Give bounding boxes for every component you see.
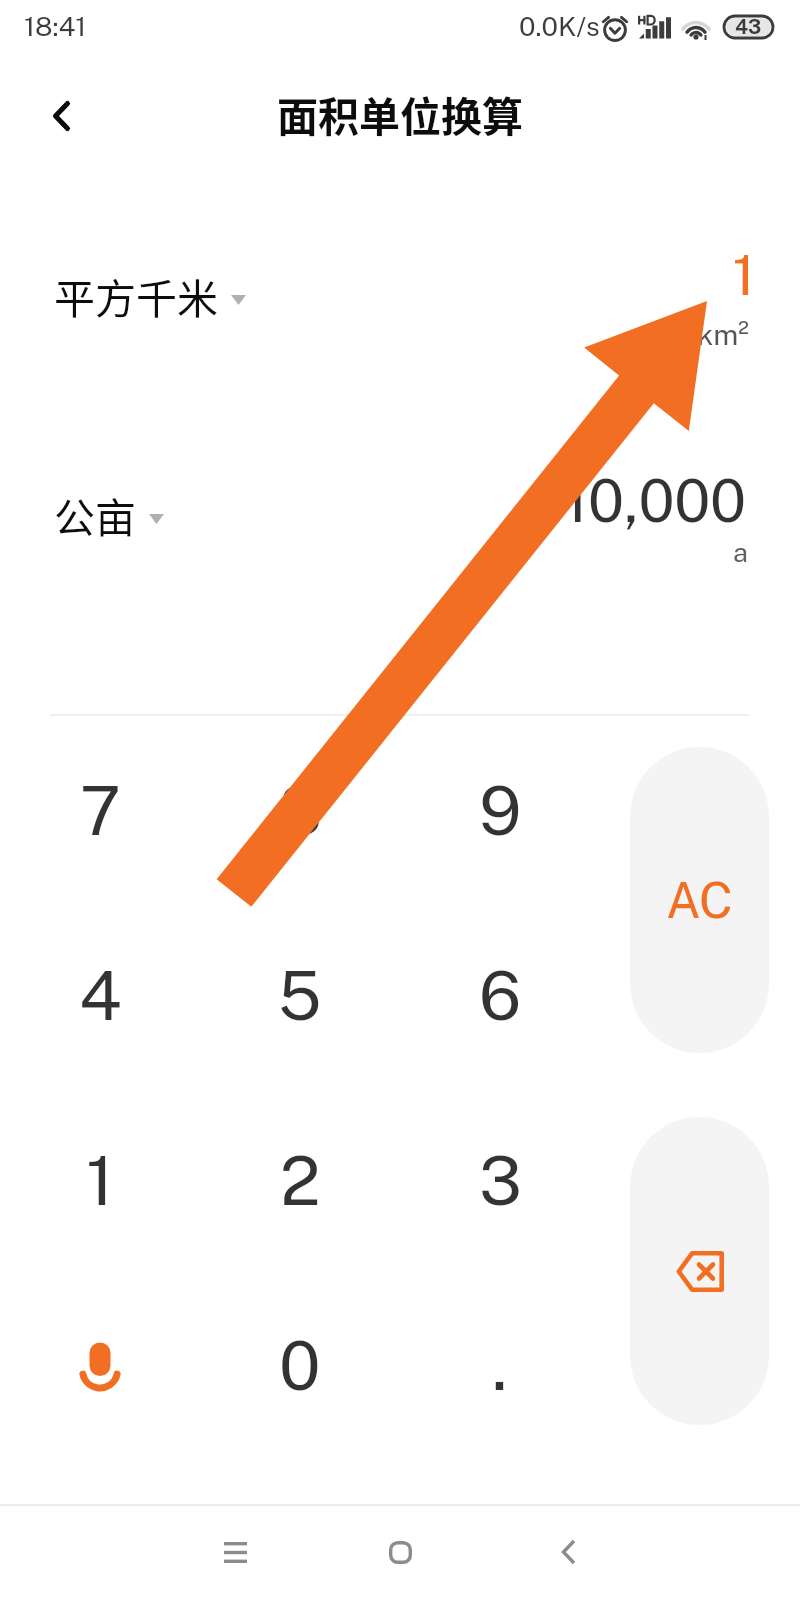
button[interactable]: 5 xyxy=(208,905,392,1085)
staticText: 7 xyxy=(80,770,121,850)
staticText: . xyxy=(492,1325,508,1405)
staticText: 2 xyxy=(280,1140,321,1220)
staticText: a xyxy=(400,536,748,568)
staticText: 面积单位换算 xyxy=(0,84,800,143)
staticText: km² xyxy=(400,317,749,351)
button[interactable]: 平方千米 xyxy=(54,266,246,325)
staticText: 公亩 xyxy=(54,485,136,544)
staticText: 43 xyxy=(735,15,762,37)
button[interactable]: 4 xyxy=(8,905,192,1085)
button[interactable]: Recent apps xyxy=(195,1512,275,1592)
staticText: 10,000 xyxy=(300,466,746,535)
button[interactable]: Voice input xyxy=(8,1275,192,1455)
button[interactable]: Back xyxy=(528,1512,608,1592)
button[interactable]: 6 xyxy=(408,905,592,1085)
button[interactable]: Backspace xyxy=(630,1117,769,1425)
button[interactable]: . xyxy=(408,1275,592,1455)
button[interactable]: 0 xyxy=(208,1275,392,1455)
button[interactable]: Back xyxy=(21,76,101,156)
button[interactable]: 2 xyxy=(208,1090,392,1270)
button[interactable]: 1 xyxy=(8,1090,192,1270)
staticText: 平方千米 xyxy=(54,266,218,325)
button[interactable]: 3 xyxy=(408,1090,592,1270)
button[interactable]: AC xyxy=(630,747,769,1053)
button[interactable]: 公亩 xyxy=(54,485,164,544)
staticText: 3 xyxy=(479,1140,522,1220)
staticText: 6 xyxy=(479,955,522,1035)
staticText: AC xyxy=(666,871,733,929)
staticText: 1 xyxy=(86,1140,114,1220)
button[interactable]: Home xyxy=(360,1512,440,1592)
staticText: 18:41 xyxy=(24,10,87,42)
button[interactable]: 8 xyxy=(208,720,392,900)
staticText: 1 xyxy=(406,243,755,308)
staticText: 5 xyxy=(278,955,322,1035)
staticText: 4 xyxy=(79,955,122,1035)
button[interactable]: 7 xyxy=(8,720,192,900)
staticText: 0.0K/s xyxy=(519,10,600,42)
staticText: 9 xyxy=(479,770,522,850)
staticText: 0 xyxy=(279,1325,321,1405)
button[interactable]: 9 xyxy=(408,720,592,900)
staticText: 8 xyxy=(278,770,323,850)
